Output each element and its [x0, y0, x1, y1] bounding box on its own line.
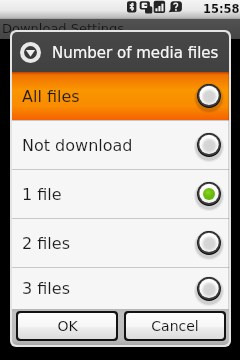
button[interactable]: Expand	[12, 32, 229, 72]
staticText: All files	[22, 87, 80, 106]
button[interactable]: 3 files	[12, 268, 229, 309]
staticText: 15:58	[203, 2, 240, 15]
staticText: OK	[57, 318, 78, 334]
staticText: Not download	[22, 136, 133, 155]
button[interactable]: OK	[18, 313, 116, 339]
staticText: 2 files	[22, 234, 70, 253]
staticText: Download Settings	[2, 21, 125, 36]
staticText: Number of media files	[52, 44, 219, 61]
staticText: 1 file	[22, 185, 62, 204]
staticText: 3 files	[22, 279, 70, 298]
button[interactable]: Cancel	[126, 313, 224, 339]
button[interactable]: All files	[12, 72, 229, 120]
staticText: Cancel	[151, 318, 199, 334]
button[interactable]: 1 file	[12, 170, 229, 218]
button[interactable]: 2 files	[12, 219, 229, 267]
button[interactable]: Not download	[12, 121, 229, 169]
other: Expand	[20, 42, 41, 63]
